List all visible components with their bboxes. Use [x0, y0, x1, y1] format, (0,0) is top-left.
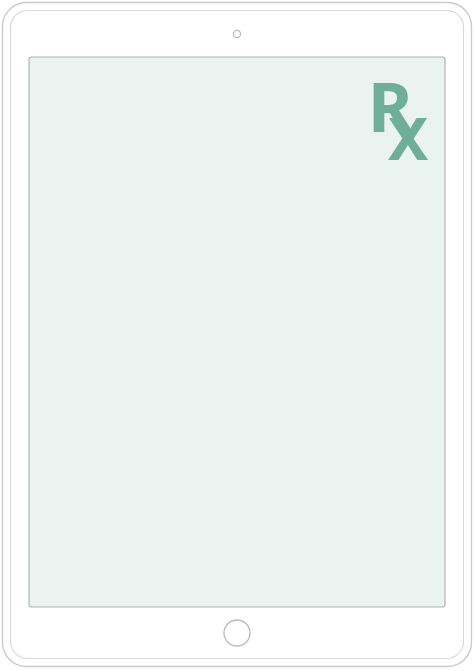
staticText: X [388, 96, 429, 178]
staticText: R [368, 59, 413, 152]
button[interactable]: Blank prescription pad on tablet [0, 0, 474, 671]
